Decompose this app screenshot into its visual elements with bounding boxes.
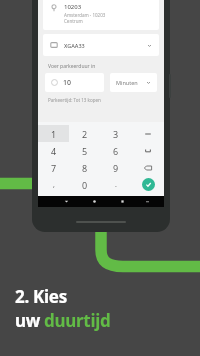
staticText: 0 [82,179,88,191]
staticText: 4 [51,145,57,157]
staticText: XGAA33 [64,42,85,49]
button[interactable]: 0 [69,176,100,193]
staticText: 7 [51,162,57,174]
button[interactable]: 10203 [43,0,159,30]
staticText: 9 [113,162,119,174]
staticText: Parkeertijd: Tot 13 kopen [48,97,101,103]
staticText: 2 [82,128,88,140]
button[interactable]: 1 [38,125,69,142]
staticText: , [53,180,55,190]
button[interactable]: Backspace [132,159,164,176]
staticText: Minuten [116,79,138,86]
staticText: 3 [113,128,119,140]
staticText: 5 [82,145,88,157]
button[interactable]: Confirm [132,176,164,193]
staticText: 1 [51,128,57,140]
button[interactable]: Recent apps [108,196,136,207]
staticText: . [115,180,117,190]
staticText: 6 [113,145,119,157]
button[interactable]: 4 [38,142,69,159]
button[interactable]: 9 [100,159,132,176]
button[interactable]: Home [80,196,108,207]
button[interactable]: 7 [38,159,69,176]
button[interactable]: 8 [69,159,100,176]
button[interactable]: 3 [100,125,132,142]
staticText: 10 [63,78,72,88]
staticText: 2. Kies [15,285,67,308]
button[interactable]: Back [52,196,80,207]
staticText: Amsterdam - 10203 [64,12,106,18]
staticText: 10203 [64,3,82,11]
button[interactable]: 10 [45,73,104,92]
button[interactable]: 5 [69,142,100,159]
button[interactable]: Minus [132,125,164,142]
staticText: Voer parkeerduur in [48,63,96,70]
button[interactable]: 2 [69,125,100,142]
button[interactable]: 6 [100,142,132,159]
staticText: 8 [82,162,88,174]
button[interactable]: Minuten [110,73,157,92]
button[interactable]: Hide keyboard [136,196,158,207]
button[interactable]: XGAA33 [43,34,159,56]
button[interactable]: , [38,176,69,193]
staticText: Centrum [64,18,83,24]
staticText: uw duurtijd [15,309,111,332]
button[interactable]: Space [132,142,164,159]
